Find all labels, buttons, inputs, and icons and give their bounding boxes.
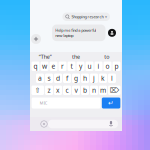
staticText: s: [47, 74, 50, 83]
button[interactable]: j: [90, 73, 98, 83]
staticText: “The”: [39, 53, 52, 60]
staticText: ▾: [105, 14, 107, 19]
staticText: v: [74, 86, 77, 95]
staticText: c: [65, 86, 68, 95]
button[interactable]: a: [36, 73, 44, 83]
staticText: r: [61, 62, 64, 71]
staticText: Help me find a powerful new laptop: [55, 27, 96, 38]
button[interactable]: l: [108, 73, 116, 83]
staticText: p: [114, 62, 118, 71]
staticText: f: [66, 74, 68, 83]
staticText: z: [47, 86, 50, 95]
button[interactable]: g: [72, 73, 80, 83]
staticText: the: [72, 53, 80, 60]
staticText: ⇧: [35, 86, 41, 94]
button[interactable]: s: [45, 73, 53, 83]
button[interactable]: u: [85, 61, 93, 71]
button[interactable]: p: [112, 61, 120, 71]
staticText: e: [51, 62, 55, 71]
button[interactable]: q: [31, 61, 39, 71]
button[interactable]: c: [63, 85, 71, 95]
button[interactable]: v: [72, 85, 80, 95]
staticText: u: [87, 62, 91, 71]
button[interactable]: Return: [102, 97, 120, 108]
button[interactable]: Camera: [38, 118, 50, 130]
button[interactable]: Shift: [31, 85, 44, 95]
staticText: ↵: [108, 99, 114, 107]
staticText: l: [111, 74, 113, 83]
button[interactable]: y: [76, 61, 84, 71]
button[interactable]: Dictate: [106, 119, 116, 129]
button[interactable]: b: [81, 85, 89, 95]
staticText: d: [56, 74, 60, 83]
staticText: a: [38, 74, 42, 83]
button[interactable]: e: [49, 61, 57, 71]
staticText: ⌦: [110, 86, 119, 94]
button[interactable]: z: [45, 85, 53, 95]
staticText: q: [33, 62, 37, 71]
staticText: t: [70, 62, 72, 71]
staticText: k: [101, 74, 105, 83]
button[interactable]: Add: [31, 34, 41, 44]
staticText: i: [97, 62, 99, 71]
staticText: to: [104, 53, 109, 60]
button[interactable]: the: [61, 53, 91, 60]
button[interactable]: k: [99, 73, 107, 83]
button[interactable]: h: [81, 73, 89, 83]
staticText: w: [42, 62, 47, 71]
button[interactable]: Shopping research: [62, 12, 110, 21]
staticText: x: [56, 86, 60, 95]
button[interactable]: m: [99, 85, 107, 95]
staticText: g: [74, 74, 78, 83]
button[interactable]: “The”: [30, 53, 61, 60]
staticText: o: [105, 62, 109, 71]
staticText: b: [83, 86, 87, 95]
button[interactable]: f: [63, 73, 71, 83]
staticText: n: [92, 86, 96, 95]
button[interactable]: t: [67, 61, 75, 71]
button[interactable]: x: [54, 85, 62, 95]
staticText: Shopping research: [71, 14, 103, 19]
staticText: m: [100, 86, 106, 95]
button[interactable]: r: [58, 61, 66, 71]
staticText: h: [83, 74, 87, 83]
staticText: y: [79, 62, 82, 71]
staticText: MIC: [40, 100, 48, 106]
button[interactable]: to: [91, 53, 122, 60]
button[interactable]: n: [90, 85, 98, 95]
button[interactable]: d: [54, 73, 62, 83]
button[interactable]: o: [103, 61, 111, 71]
staticText: j: [93, 74, 95, 83]
button[interactable]: i: [94, 61, 102, 71]
button[interactable]: Delete: [108, 85, 120, 95]
button[interactable]: MIC: [32, 97, 101, 108]
button[interactable]: w: [40, 61, 48, 71]
